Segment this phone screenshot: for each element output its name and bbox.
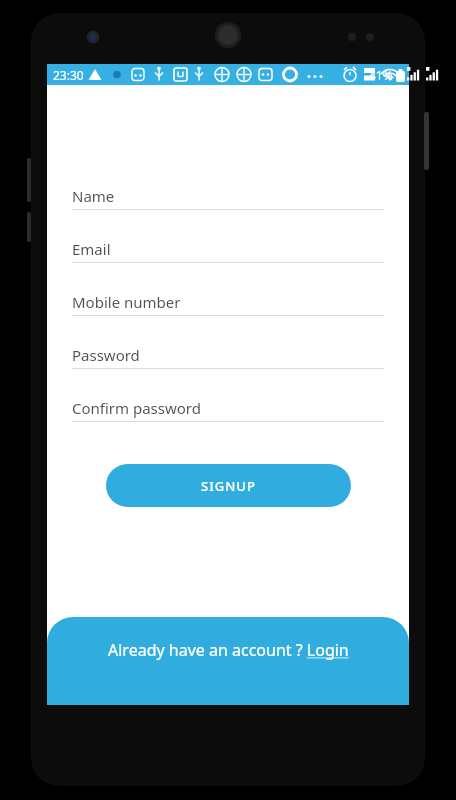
button[interactable]: Confirm password bbox=[72, 386, 384, 439]
button[interactable]: Already have an account ? Login bbox=[47, 617, 409, 705]
button[interactable]: Password bbox=[72, 333, 384, 386]
staticText: Mobile number bbox=[72, 292, 181, 312]
staticText: Password bbox=[72, 345, 140, 365]
staticText: Already have an account ? Login bbox=[108, 639, 349, 661]
button[interactable]: Name bbox=[72, 174, 384, 227]
button[interactable]: SIGNUP bbox=[106, 464, 351, 507]
staticText: Email bbox=[72, 239, 111, 259]
staticText: 23:30 bbox=[53, 67, 84, 83]
staticText: Confirm password bbox=[72, 398, 201, 418]
staticText: SIGNUP bbox=[201, 477, 256, 495]
button[interactable]: Mobile number bbox=[72, 280, 384, 333]
staticText: Name bbox=[72, 186, 115, 206]
staticText: 41% bbox=[369, 67, 393, 83]
button[interactable]: Email bbox=[72, 227, 384, 280]
